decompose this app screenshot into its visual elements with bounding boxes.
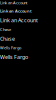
staticText: Link an Account — [0, 0, 27, 5]
staticText: Chase — [0, 35, 15, 42]
staticText: Wells Fargo — [0, 45, 21, 50]
staticText: Wells Fargo — [0, 53, 28, 60]
staticText: Link an Account — [0, 17, 38, 24]
staticText: Link an Account — [0, 8, 32, 14]
staticText: Chase — [0, 27, 11, 32]
